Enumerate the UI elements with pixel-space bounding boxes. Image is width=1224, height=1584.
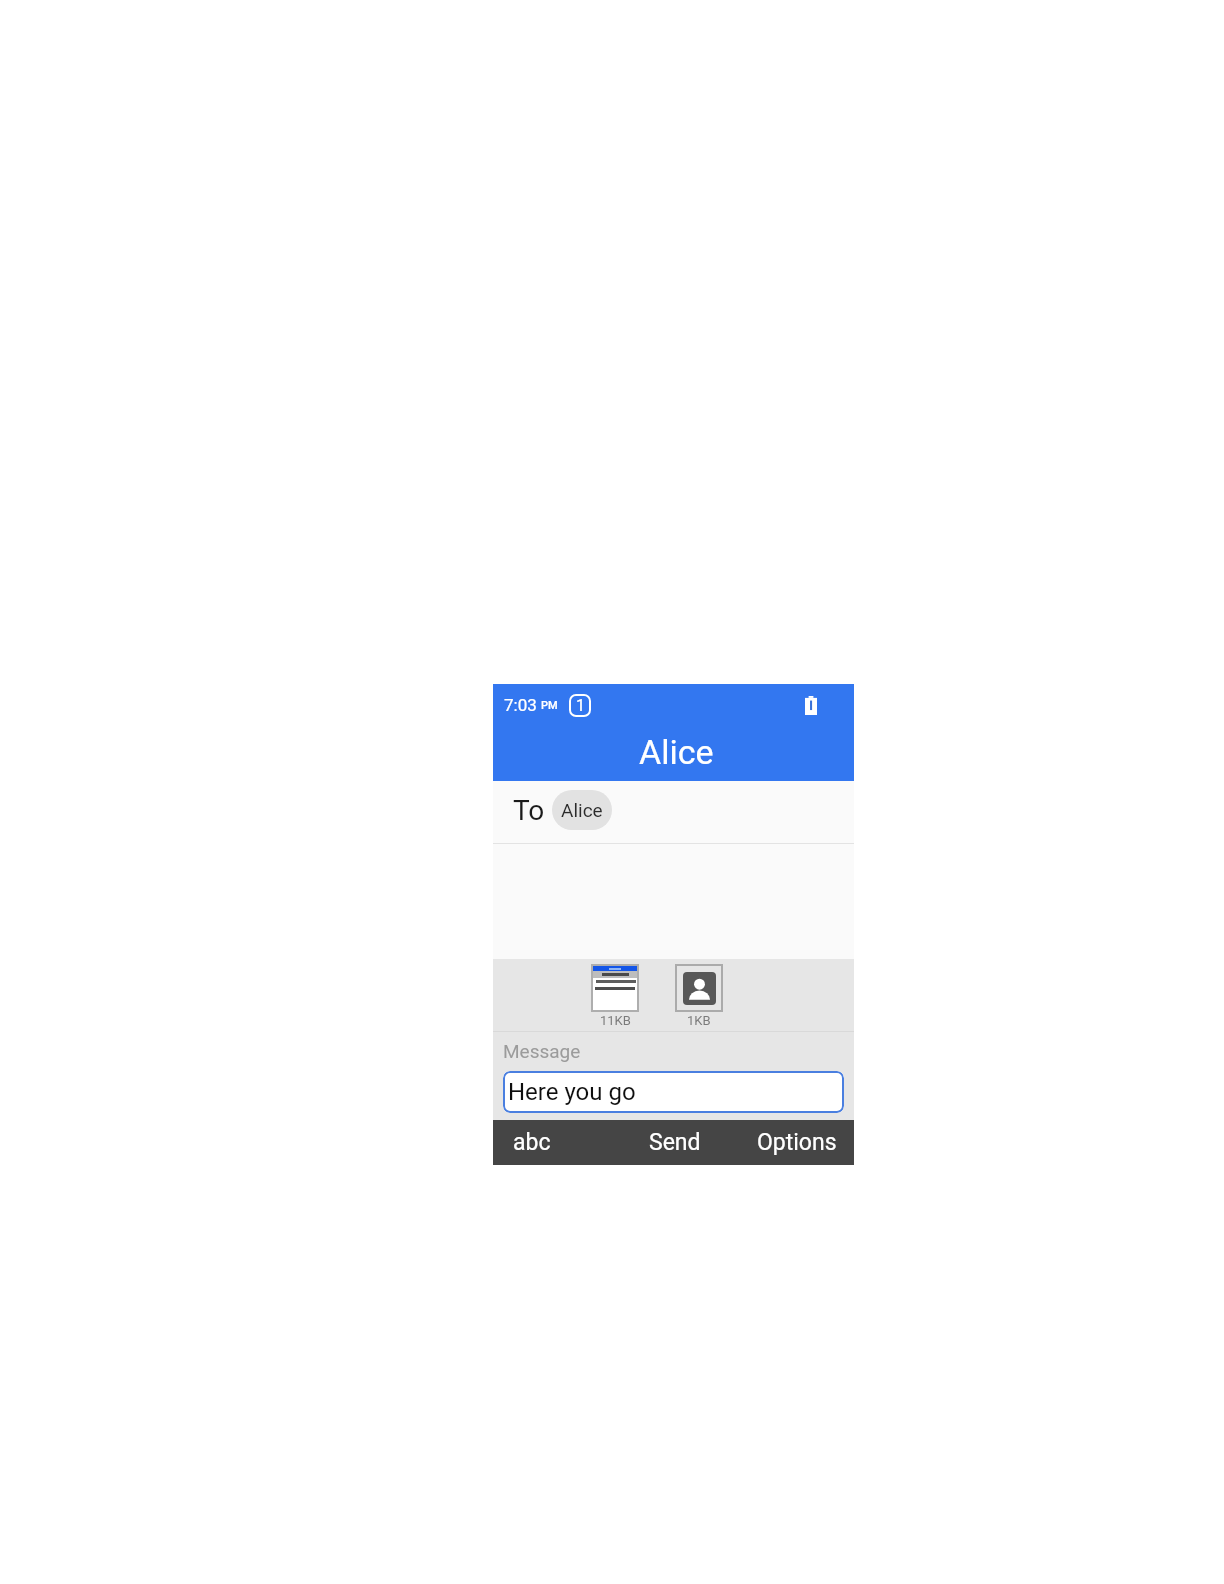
staticText: Send <box>649 1129 701 1156</box>
staticText: Here you go <box>508 1078 636 1106</box>
staticText: Message <box>503 1040 581 1062</box>
button[interactable]: Contact card attachment, 1KB <box>675 964 723 1028</box>
button[interactable]: Options <box>734 1120 854 1165</box>
staticText: PM <box>541 699 558 712</box>
staticText: Options <box>757 1129 837 1156</box>
staticText: 7:03 <box>504 695 537 715</box>
staticText: Alice <box>561 799 603 821</box>
other: Battery <box>805 696 817 715</box>
staticText: 1 <box>576 696 585 715</box>
button[interactable]: Here you go <box>503 1071 844 1113</box>
staticText: 11KB <box>600 1013 631 1028</box>
button[interactable]: Send <box>614 1120 734 1165</box>
staticText: abc <box>513 1129 551 1156</box>
button[interactable]: abc <box>493 1120 614 1165</box>
staticText: 1KB <box>687 1013 711 1028</box>
staticText: Alice <box>639 732 714 772</box>
button[interactable]: To <box>493 781 854 843</box>
staticText: To <box>513 794 545 827</box>
button[interactable]: Image attachment, 11KB <box>591 964 639 1028</box>
button[interactable]: Alice <box>552 790 612 830</box>
